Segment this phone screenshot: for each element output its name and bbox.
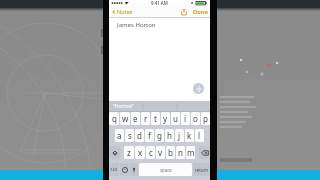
staticText: x [138, 147, 143, 158]
staticText: g [157, 130, 162, 141]
button[interactable]: v [156, 146, 165, 159]
staticText: c [149, 147, 153, 158]
button[interactable]: “Horton” [113, 103, 134, 110]
button[interactable]: y [161, 112, 170, 125]
staticText: p [203, 113, 208, 124]
staticText: 9:41 AM [151, 0, 168, 6]
staticText: return [195, 167, 209, 173]
staticText: q [112, 113, 117, 124]
button[interactable]: n [176, 146, 185, 159]
button[interactable]: h [165, 129, 174, 142]
button[interactable]: return [193, 163, 210, 176]
button[interactable]: Backspace [199, 146, 210, 159]
staticText: j [178, 130, 181, 141]
button[interactable]: Dictate [130, 163, 138, 176]
button[interactable]: Scroll to bottom [193, 83, 204, 94]
staticText: n [178, 147, 183, 158]
staticText: b [168, 147, 173, 158]
button[interactable]: u [171, 112, 180, 125]
button[interactable]: Done [193, 8, 208, 16]
button[interactable]: space [139, 163, 192, 176]
staticText: k [187, 130, 192, 141]
button[interactable]: Notes [111, 8, 133, 16]
button[interactable]: b [166, 146, 175, 159]
button[interactable]: z [124, 146, 134, 159]
button[interactable]: Shift [109, 146, 120, 159]
staticText: Notes [117, 8, 133, 16]
staticText: space [160, 167, 172, 173]
staticText: m [187, 147, 195, 158]
staticText: 123 [110, 167, 118, 173]
button[interactable]: i [181, 112, 190, 125]
staticText: r [144, 113, 148, 124]
staticText: t [154, 113, 157, 124]
button[interactable]: x [135, 146, 145, 159]
staticText: h [167, 130, 172, 141]
staticText: f [148, 130, 151, 141]
staticText: s [128, 130, 132, 141]
staticText: y [163, 113, 168, 124]
button[interactable]: g [155, 129, 164, 142]
staticText: James Horton [117, 21, 156, 29]
button[interactable]: j [175, 129, 184, 142]
staticText: e [133, 113, 138, 124]
staticText: a [117, 130, 122, 141]
button[interactable]: r [141, 112, 150, 125]
button[interactable]: w [120, 112, 130, 125]
button[interactable]: d [135, 129, 144, 142]
staticText: l [198, 130, 201, 141]
button[interactable]: p [201, 112, 210, 125]
staticText: d [137, 130, 142, 141]
button[interactable]: Share [180, 8, 188, 16]
button[interactable]: s [125, 129, 134, 142]
staticText: o [193, 113, 198, 124]
button[interactable]: a [115, 129, 124, 142]
button[interactable]: t [151, 112, 160, 125]
staticText: w [122, 113, 129, 124]
staticText: u [173, 113, 178, 124]
button[interactable]: q [109, 112, 119, 125]
button[interactable]: f [145, 129, 154, 142]
button[interactable]: m [186, 146, 195, 159]
button[interactable]: o [191, 112, 200, 125]
staticText: i [184, 113, 187, 124]
button[interactable]: k [185, 129, 194, 142]
button[interactable]: e [131, 112, 140, 125]
button[interactable]: Emoji [120, 163, 129, 176]
button[interactable]: l [195, 129, 204, 142]
staticText: z [127, 147, 131, 158]
button[interactable]: 123 [109, 163, 119, 176]
staticText: v [158, 147, 163, 158]
button[interactable]: c [146, 146, 155, 159]
